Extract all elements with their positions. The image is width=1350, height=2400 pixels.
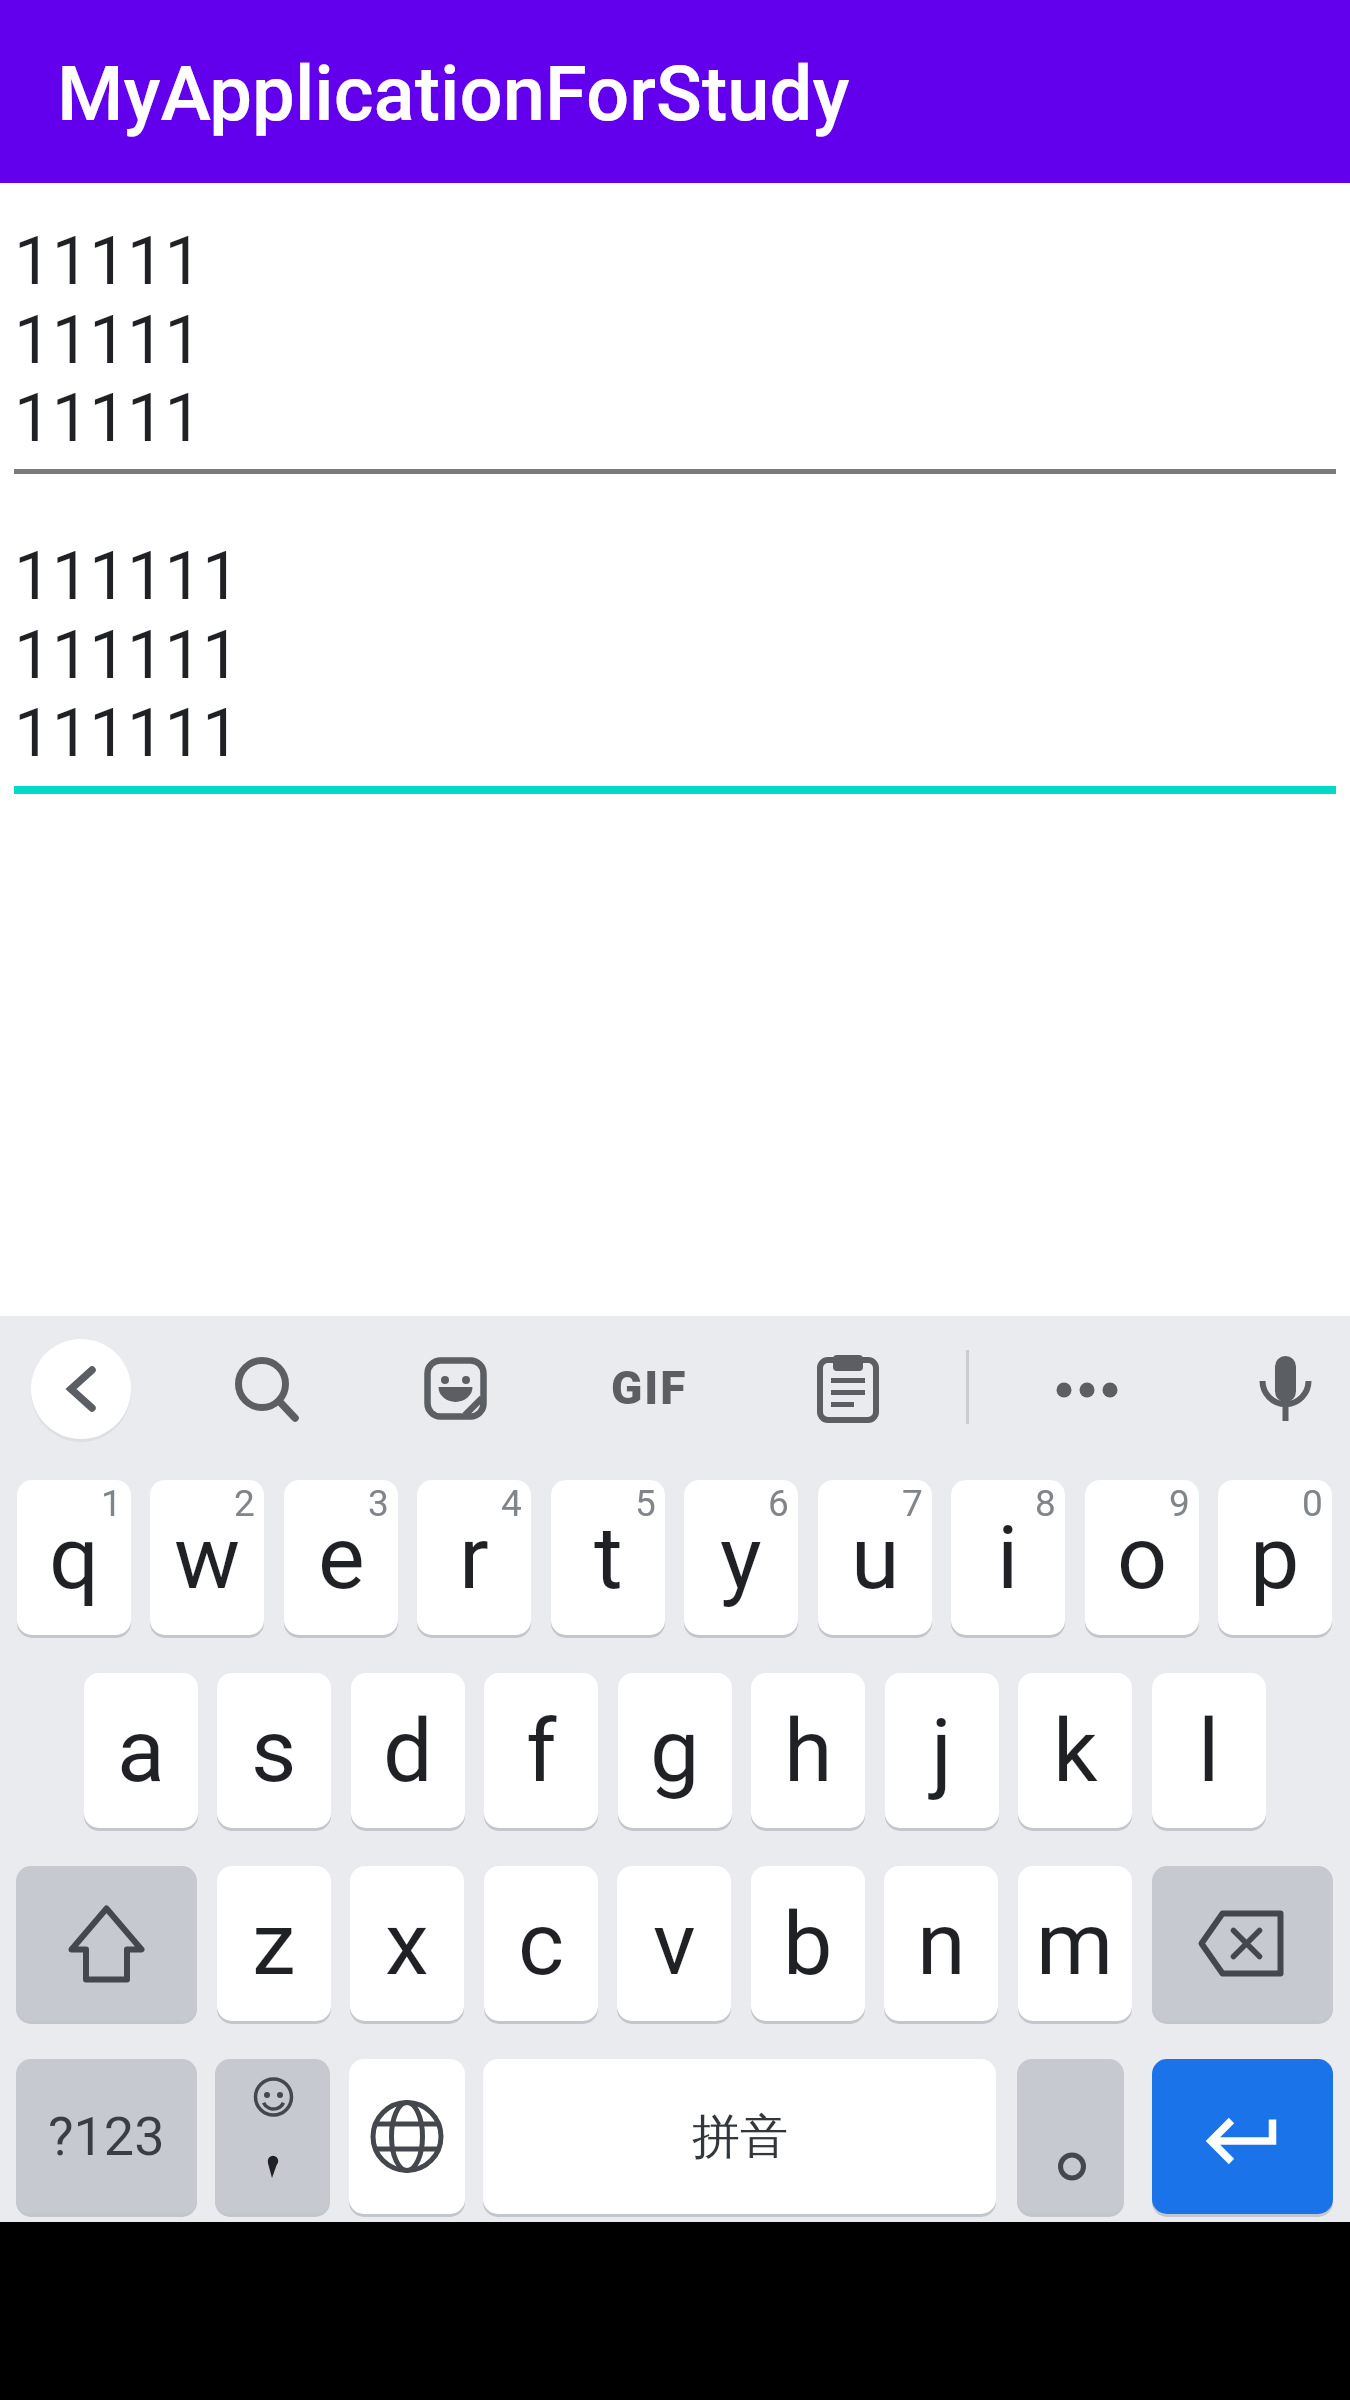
button[interactable]: b	[751, 1866, 865, 2021]
staticText: 5	[635, 1482, 656, 1525]
button[interactable]	[217, 1340, 313, 1436]
staticText: 6	[768, 1482, 789, 1525]
staticText: 111111 111111 111111	[14, 537, 240, 773]
button[interactable]	[349, 2059, 465, 2214]
staticText: n	[917, 1892, 966, 1995]
staticText: 11111 11111 11111	[14, 222, 203, 458]
staticText: w	[174, 1506, 241, 1609]
button[interactable]: a	[84, 1673, 198, 1828]
staticText: v	[653, 1892, 696, 1995]
button[interactable]: u	[818, 1480, 932, 1635]
button[interactable]	[408, 1340, 504, 1436]
button[interactable]: h	[751, 1673, 865, 1828]
staticText: 3	[368, 1482, 389, 1525]
staticText: 拼音	[692, 2107, 788, 2167]
button[interactable]: ?123	[16, 2059, 197, 2214]
button[interactable]: v	[617, 1866, 731, 2021]
button[interactable]: l	[1152, 1673, 1266, 1828]
button[interactable]: GIF	[600, 1340, 698, 1436]
button[interactable]: m	[1018, 1866, 1132, 2021]
button[interactable]	[215, 2059, 330, 2214]
button[interactable]: f	[484, 1673, 598, 1828]
staticText: i	[997, 1506, 1019, 1609]
staticText: x	[385, 1892, 429, 1995]
staticText: b	[783, 1892, 833, 1995]
staticText: f	[526, 1699, 557, 1802]
staticText: c	[518, 1892, 565, 1995]
staticText: 0	[1302, 1482, 1323, 1525]
staticText: h	[784, 1699, 833, 1802]
button[interactable]: y	[684, 1480, 798, 1635]
staticText: t	[594, 1506, 623, 1609]
button[interactable]: k	[1018, 1673, 1132, 1828]
button[interactable]: i	[951, 1480, 1065, 1635]
staticText: 2	[234, 1482, 255, 1525]
staticText: y	[720, 1506, 762, 1609]
staticText: l	[1198, 1699, 1220, 1802]
staticText: p	[1250, 1506, 1300, 1609]
staticText: a	[117, 1699, 165, 1802]
button[interactable]: e	[284, 1480, 398, 1635]
button[interactable]	[1152, 1866, 1333, 2021]
staticText: s	[251, 1699, 297, 1802]
button[interactable]	[16, 1866, 197, 2021]
button[interactable]: q	[17, 1480, 131, 1635]
button[interactable]: t	[551, 1480, 665, 1635]
button[interactable]: s	[217, 1673, 331, 1828]
button[interactable]: x	[350, 1866, 464, 2021]
button[interactable]: o	[1085, 1480, 1199, 1635]
staticText: e	[318, 1506, 365, 1609]
staticText: q	[49, 1506, 100, 1609]
button[interactable]: d	[351, 1673, 465, 1828]
button[interactable]	[1152, 2059, 1333, 2214]
staticText: 7	[902, 1482, 923, 1525]
staticText: u	[851, 1506, 900, 1609]
button[interactable]: g	[618, 1673, 732, 1828]
staticText: j	[931, 1699, 953, 1802]
button[interactable]	[31, 1339, 131, 1439]
button[interactable]: n	[884, 1866, 998, 2021]
staticText: k	[1053, 1699, 1098, 1802]
staticText: 9	[1169, 1482, 1190, 1525]
button[interactable]: r	[417, 1480, 531, 1635]
staticText: g	[650, 1699, 700, 1802]
staticText: MyApplicationForStudy	[57, 49, 850, 138]
staticText: r	[459, 1506, 489, 1609]
staticText: 4	[501, 1482, 522, 1525]
button[interactable]	[1039, 1340, 1135, 1436]
button[interactable]: c	[484, 1866, 598, 2021]
staticText: o	[1117, 1506, 1168, 1609]
button[interactable]: z	[217, 1866, 331, 2021]
button[interactable]	[1237, 1340, 1333, 1436]
staticText: d	[383, 1699, 433, 1802]
staticText: 8	[1035, 1482, 1056, 1525]
staticText: GIF	[611, 1361, 688, 1415]
button[interactable]: j	[885, 1673, 999, 1828]
staticText: ?123	[48, 2105, 165, 2168]
button[interactable]	[1017, 2059, 1124, 2214]
button[interactable]	[800, 1340, 896, 1436]
button[interactable]: 拼音	[483, 2059, 996, 2214]
button[interactable]: w	[150, 1480, 264, 1635]
staticText: 1	[101, 1482, 122, 1525]
button[interactable]: p	[1218, 1480, 1332, 1635]
staticText: z	[252, 1892, 296, 1995]
staticText: m	[1036, 1892, 1114, 1995]
